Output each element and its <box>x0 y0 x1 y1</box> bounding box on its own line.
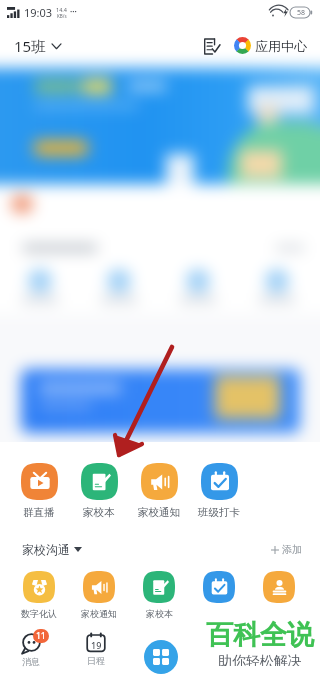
staticText: 19 <box>91 639 102 651</box>
staticText: 助你轻松解决 <box>218 653 302 666</box>
button[interactable]: 家校通知 <box>69 571 129 619</box>
staticText: 数字化认 <box>21 608 57 619</box>
staticText: 百科全说 <box>206 618 314 652</box>
staticText: ••• <box>70 8 77 16</box>
staticText: 19:03 <box>24 5 53 20</box>
staticText: 58 <box>297 8 306 18</box>
staticText: 家校本 <box>146 608 173 619</box>
button[interactable]: 19 <box>76 633 116 666</box>
staticText: KB/s <box>57 13 67 19</box>
staticText: 14.4 <box>56 6 67 13</box>
staticText: 15班 <box>14 36 47 56</box>
staticText: 家校本 <box>83 506 115 519</box>
staticText: 家校通知 <box>138 506 180 519</box>
staticText: 11 <box>36 630 46 642</box>
staticText: 消息 <box>22 656 40 667</box>
button[interactable]: 家校本 <box>69 463 129 519</box>
button[interactable]: 作业本 <box>197 32 225 60</box>
staticText: 家校通知 <box>81 608 117 619</box>
staticText: 班级打卡 <box>198 506 240 519</box>
staticText: 家校沟通 <box>22 542 70 557</box>
button[interactable]: 家校本 <box>129 571 189 619</box>
button[interactable]: 数字化认 <box>9 571 69 619</box>
staticText: 添加 <box>282 543 302 556</box>
button[interactable]: 添加 <box>271 543 302 556</box>
button[interactable]: 应用中心 <box>234 37 307 54</box>
button[interactable]: 15班 <box>14 36 61 56</box>
button[interactable] <box>189 571 249 620</box>
button[interactable]: 应用 <box>144 640 178 674</box>
button[interactable]: 班级打卡 <box>189 463 249 519</box>
staticText: 应用中心 <box>255 38 307 54</box>
button[interactable] <box>249 571 309 620</box>
staticText: 群直播 <box>23 506 55 519</box>
button[interactable]: 11 <box>11 633 51 667</box>
button[interactable]: 家校通知 <box>129 463 189 519</box>
button[interactable]: 群直播 <box>9 463 69 519</box>
staticText: 日程 <box>87 655 105 666</box>
button[interactable]: 家校沟通 <box>22 542 82 557</box>
